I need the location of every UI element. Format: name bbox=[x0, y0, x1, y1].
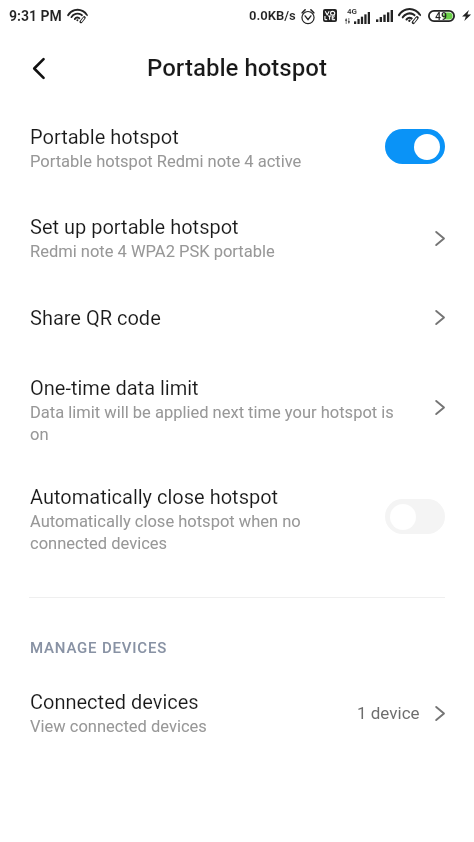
staticText: 1 device bbox=[357, 703, 420, 723]
button[interactable]: Connected devices bbox=[0, 690, 474, 736]
staticText: Data limit will be applied next time you… bbox=[30, 403, 400, 444]
staticText: Share QR code bbox=[30, 306, 161, 329]
staticText: Connected devices bbox=[30, 690, 199, 713]
staticText: 4G bbox=[347, 7, 358, 16]
staticText: 0.0KB/s bbox=[249, 8, 296, 23]
button[interactable]: Back bbox=[19, 48, 59, 88]
staticText: MANAGE DEVICES bbox=[30, 639, 168, 657]
button[interactable]: Share QR code bbox=[0, 283, 474, 353]
button[interactable]: Turn on bbox=[385, 499, 445, 534]
staticText: Portable hotspot Redmi note 4 active bbox=[30, 152, 302, 171]
button[interactable]: Set up portable hotspot bbox=[0, 192, 474, 283]
staticText: View connected devices bbox=[30, 717, 207, 736]
button[interactable]: One-time data limit bbox=[0, 353, 474, 462]
staticText: Set up portable hotspot bbox=[30, 215, 239, 238]
staticText: One-time data limit bbox=[30, 376, 199, 399]
button[interactable]: Portable hotspot bbox=[0, 104, 474, 192]
staticText: Automatically close hotspot bbox=[30, 485, 279, 508]
staticText: Portable hotspot bbox=[147, 54, 327, 82]
button[interactable]: Automatically close hotspot bbox=[0, 462, 474, 578]
staticText: Portable hotspot bbox=[30, 125, 179, 148]
staticText: Automatically close hotspot when no conn… bbox=[30, 512, 361, 553]
staticText: 9:31 PM bbox=[9, 8, 62, 24]
staticText: 49 bbox=[435, 10, 448, 22]
staticText: Redmi note 4 WPA2 PSK portable bbox=[30, 242, 275, 261]
button[interactable]: Turn off bbox=[385, 129, 445, 164]
